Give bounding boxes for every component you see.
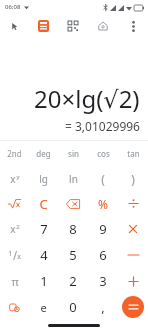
button[interactable]: 8: [58, 216, 88, 242]
staticText: ): [131, 171, 135, 187]
button[interactable]: Plus: [118, 268, 148, 294]
button[interactable]: Multiply: [118, 216, 148, 242]
button[interactable]: 6: [88, 242, 118, 268]
button[interactable]: deg: [29, 141, 58, 166]
staticText: x: [17, 252, 21, 262]
staticText: 0: [69, 298, 77, 316]
staticText: 7: [40, 220, 48, 238]
button[interactable]: Minus: [118, 242, 148, 268]
button[interactable]: sin: [58, 141, 88, 166]
staticText: 9: [99, 220, 107, 238]
staticText: cos: [97, 148, 110, 159]
staticText: π: [11, 274, 19, 289]
button[interactable]: Home: [88, 14, 118, 38]
staticText: 5: [69, 246, 77, 264]
button[interactable]: 1: [29, 268, 58, 294]
button[interactable]: (: [88, 166, 118, 191]
button[interactable]: 2: [58, 268, 88, 294]
button[interactable]: ): [118, 166, 148, 191]
button[interactable]: ln: [58, 166, 88, 191]
staticText: x: [10, 172, 16, 186]
staticText: ∕: [13, 249, 17, 262]
button[interactable]: Square root: [0, 191, 29, 216]
button[interactable]: Calculator: [29, 14, 58, 38]
button[interactable]: π: [0, 268, 29, 294]
staticText: deg: [36, 148, 51, 159]
staticText: %: [98, 196, 108, 212]
button[interactable]: %: [88, 191, 118, 216]
button[interactable]: Reciprocal: [0, 242, 29, 268]
button[interactable]: Divide: [118, 191, 148, 216]
staticText: 1: [40, 272, 48, 290]
staticText: (: [101, 171, 105, 187]
staticText: sin: [68, 148, 79, 159]
button[interactable]: x: [0, 216, 29, 242]
staticText: tan: [127, 148, 140, 159]
staticText: x: [10, 222, 16, 236]
staticText: C: [39, 195, 48, 213]
button[interactable]: More options: [118, 14, 148, 38]
staticText: y: [16, 173, 20, 181]
staticText: ,: [101, 298, 105, 316]
button[interactable]: cos: [88, 141, 118, 166]
button[interactable]: 4: [29, 242, 58, 268]
staticText: = 3,01029996: [65, 118, 140, 134]
staticText: 6: [99, 246, 107, 264]
button[interactable]: C: [29, 191, 58, 216]
staticText: 06:08: [5, 3, 21, 11]
staticText: 2: [69, 272, 77, 290]
button[interactable]: History: [0, 294, 29, 320]
button[interactable]: Scan: [58, 14, 88, 38]
button[interactable]: 7: [29, 216, 58, 242]
button[interactable]: ,: [88, 294, 118, 320]
button[interactable]: 5: [58, 242, 88, 268]
staticText: 1: [8, 249, 13, 259]
button[interactable]: 9: [88, 216, 118, 242]
button[interactable]: tan: [118, 141, 148, 166]
button[interactable]: lg: [29, 166, 58, 191]
button[interactable]: Pointer: [0, 14, 29, 38]
staticText: 20×lg(√2): [34, 82, 140, 115]
staticText: 3: [99, 272, 107, 290]
staticText: ln: [69, 172, 78, 186]
staticText: 2: [16, 223, 20, 231]
button[interactable]: Backspace: [58, 191, 88, 216]
staticText: lg: [39, 172, 48, 186]
button[interactable]: Equals: [122, 296, 144, 318]
staticText: e: [40, 300, 47, 315]
button[interactable]: x: [0, 166, 29, 191]
staticText: 8: [69, 220, 77, 238]
button[interactable]: 2nd: [0, 141, 29, 166]
button[interactable]: 0: [58, 294, 88, 320]
staticText: 4: [40, 246, 48, 264]
button[interactable]: e: [29, 294, 58, 320]
staticText: 2nd: [7, 148, 22, 159]
button[interactable]: 3: [88, 268, 118, 294]
